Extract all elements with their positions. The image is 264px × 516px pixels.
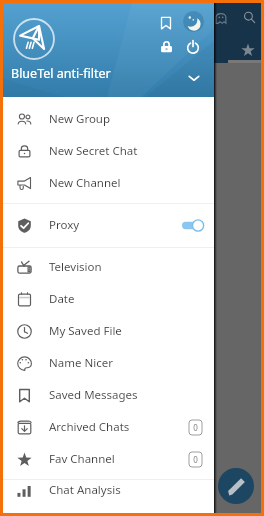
button[interactable]: New Channel	[0, 167, 214, 199]
button[interactable]: New message	[218, 468, 254, 504]
button[interactable]: Television	[0, 251, 214, 283]
button[interactable]: Name Nicer	[0, 347, 214, 379]
staticText: Fav Channel	[49, 451, 115, 467]
button[interactable]: Fav Channel	[0, 443, 214, 475]
button[interactable]: My Saved File	[0, 315, 214, 347]
staticText: 0	[193, 422, 198, 433]
staticText: Proxy	[49, 217, 80, 233]
button[interactable]: Lock app	[160, 40, 173, 53]
button[interactable]: Saved Messages	[0, 379, 214, 411]
staticText: Chat Analysis	[49, 482, 121, 498]
button[interactable]: Date	[0, 283, 214, 315]
staticText: Archived Chats	[49, 419, 130, 435]
button[interactable]: New Secret Chat	[0, 135, 214, 167]
button[interactable]: New Group	[0, 103, 214, 135]
staticText: New Channel	[49, 175, 121, 191]
staticText: My Saved File	[49, 323, 122, 339]
button[interactable]: Expand accounts	[187, 71, 201, 85]
button[interactable]: Archived Chats	[0, 411, 214, 443]
staticText: Saved Messages	[49, 387, 138, 403]
staticText: Television	[49, 259, 102, 275]
button[interactable]: Night mode	[183, 11, 204, 32]
staticText: New Secret Chat	[49, 143, 138, 159]
staticText: 0	[193, 454, 198, 465]
staticText: Name Nicer	[49, 355, 113, 371]
staticText: BlueTel anti-filter	[11, 65, 111, 82]
button[interactable]: Ghost mode	[214, 11, 228, 25]
button[interactable]: Power off	[186, 40, 200, 54]
button[interactable]: Search	[243, 11, 256, 24]
button[interactable]: Saved messages	[159, 16, 173, 30]
staticText: New Group	[49, 111, 111, 127]
button[interactable]: Proxy	[0, 209, 214, 241]
staticText: Date	[49, 291, 75, 307]
button[interactable]: Chat Analysis	[0, 474, 214, 506]
